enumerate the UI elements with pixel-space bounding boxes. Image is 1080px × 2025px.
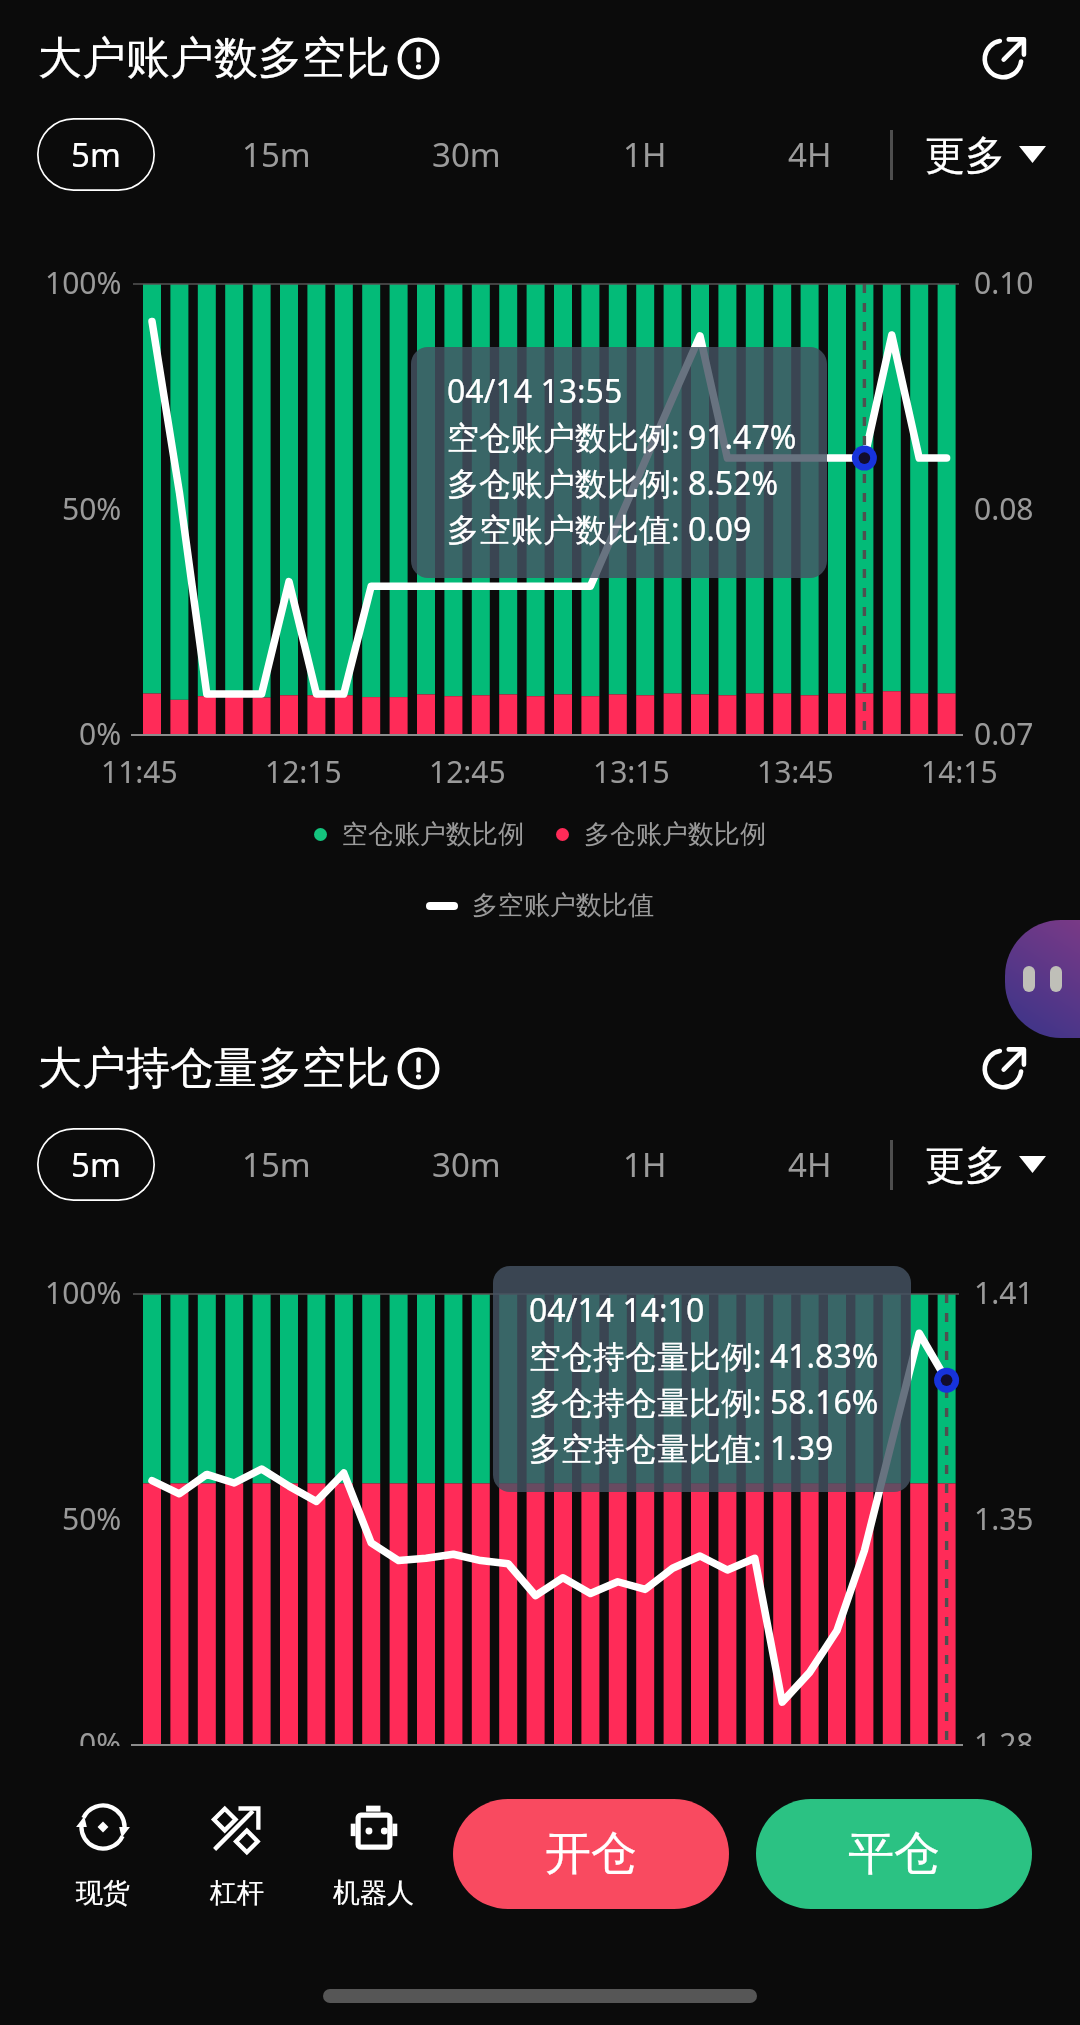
button[interactable]: 开仓 bbox=[453, 1799, 729, 1909]
staticText: 1.41 bbox=[974, 1272, 1034, 1313]
staticText: 15m bbox=[242, 132, 311, 177]
staticText: 13:15 bbox=[593, 751, 670, 792]
staticText: 13:45 bbox=[757, 751, 834, 792]
staticText: 04/14 14:10 bbox=[529, 1288, 705, 1332]
button[interactable]: 现货 bbox=[43, 1798, 163, 1916]
staticText: 现货 bbox=[76, 1876, 130, 1910]
button[interactable]: Share bbox=[974, 26, 1036, 88]
button[interactable]: 1H bbox=[573, 1128, 717, 1201]
staticText: 空仓账户数比例: 91.47% bbox=[447, 415, 797, 459]
button[interactable]: 4H bbox=[738, 1128, 882, 1201]
staticText: 5m bbox=[71, 1142, 121, 1187]
staticText: 更多 bbox=[925, 1140, 1005, 1190]
staticText: 0.07 bbox=[974, 713, 1034, 754]
button[interactable]: 15m bbox=[204, 1128, 348, 1201]
staticText: 空仓持仓量比例: 41.83% bbox=[529, 1334, 879, 1378]
staticText: 100% bbox=[45, 1272, 122, 1313]
staticText: 0.08 bbox=[974, 488, 1034, 529]
button[interactable]: 杠杆 bbox=[177, 1798, 297, 1916]
staticText: 4H bbox=[788, 132, 832, 177]
staticText: 机器人 bbox=[333, 1876, 414, 1910]
button[interactable]: 5m bbox=[37, 1128, 155, 1201]
staticText: 多空持仓量比值: 1.39 bbox=[529, 1426, 834, 1470]
staticText: 多仓持仓量比例: 58.16% bbox=[529, 1380, 879, 1424]
staticText: 大户持仓量多空比 bbox=[38, 1041, 390, 1096]
button[interactable]: Info bbox=[394, 34, 442, 82]
staticText: 平仓 bbox=[848, 1825, 940, 1883]
staticText: 1H bbox=[623, 1142, 667, 1187]
staticText: 1H bbox=[623, 132, 667, 177]
staticText: 多空账户数比值 bbox=[472, 889, 654, 922]
staticText: 4H bbox=[788, 1142, 832, 1187]
staticText: 12:45 bbox=[429, 751, 506, 792]
staticText: 1.28 bbox=[974, 1723, 1034, 1764]
staticText: 15m bbox=[242, 1142, 311, 1187]
staticText: 04/14 13:55 bbox=[447, 369, 623, 413]
staticText: 空仓账户数比例 bbox=[342, 818, 524, 851]
staticText: 0.10 bbox=[974, 262, 1034, 303]
button[interactable]: 1H bbox=[573, 118, 717, 191]
button[interactable]: 更多 bbox=[925, 1128, 1046, 1201]
staticText: 多空账户数比值: 0.09 bbox=[447, 507, 752, 551]
button[interactable]: 30m bbox=[394, 1128, 538, 1201]
staticText: 1.35 bbox=[974, 1498, 1034, 1539]
staticText: 12:15 bbox=[265, 751, 342, 792]
staticText: 0% bbox=[79, 713, 122, 754]
button[interactable]: Assistant bbox=[1005, 920, 1080, 1038]
button[interactable]: 平仓 bbox=[756, 1799, 1032, 1909]
staticText: 14:15 bbox=[921, 751, 998, 792]
button[interactable]: Info bbox=[394, 1044, 442, 1092]
staticText: 11:45 bbox=[101, 751, 178, 792]
staticText: 50% bbox=[62, 488, 122, 529]
button[interactable]: 30m bbox=[394, 118, 538, 191]
staticText: 杠杆 bbox=[210, 1876, 264, 1910]
staticText: 更多 bbox=[925, 130, 1005, 180]
staticText: 30m bbox=[432, 1142, 501, 1187]
button[interactable]: 4H bbox=[738, 118, 882, 191]
button[interactable]: 5m bbox=[37, 118, 155, 191]
staticText: 100% bbox=[45, 262, 122, 303]
staticText: 大户账户数多空比 bbox=[38, 31, 390, 86]
button[interactable]: 更多 bbox=[925, 118, 1046, 191]
button[interactable]: 15m bbox=[204, 118, 348, 191]
button[interactable]: 机器人 bbox=[313, 1798, 433, 1916]
button[interactable]: Share bbox=[974, 1036, 1036, 1098]
staticText: 30m bbox=[432, 132, 501, 177]
staticText: 0% bbox=[79, 1723, 122, 1764]
staticText: 开仓 bbox=[545, 1825, 637, 1883]
staticText: 5m bbox=[71, 132, 121, 177]
staticText: 多仓账户数比例 bbox=[584, 818, 766, 851]
staticText: 多仓账户数比例: 8.52% bbox=[447, 461, 778, 505]
staticText: 50% bbox=[62, 1498, 122, 1539]
